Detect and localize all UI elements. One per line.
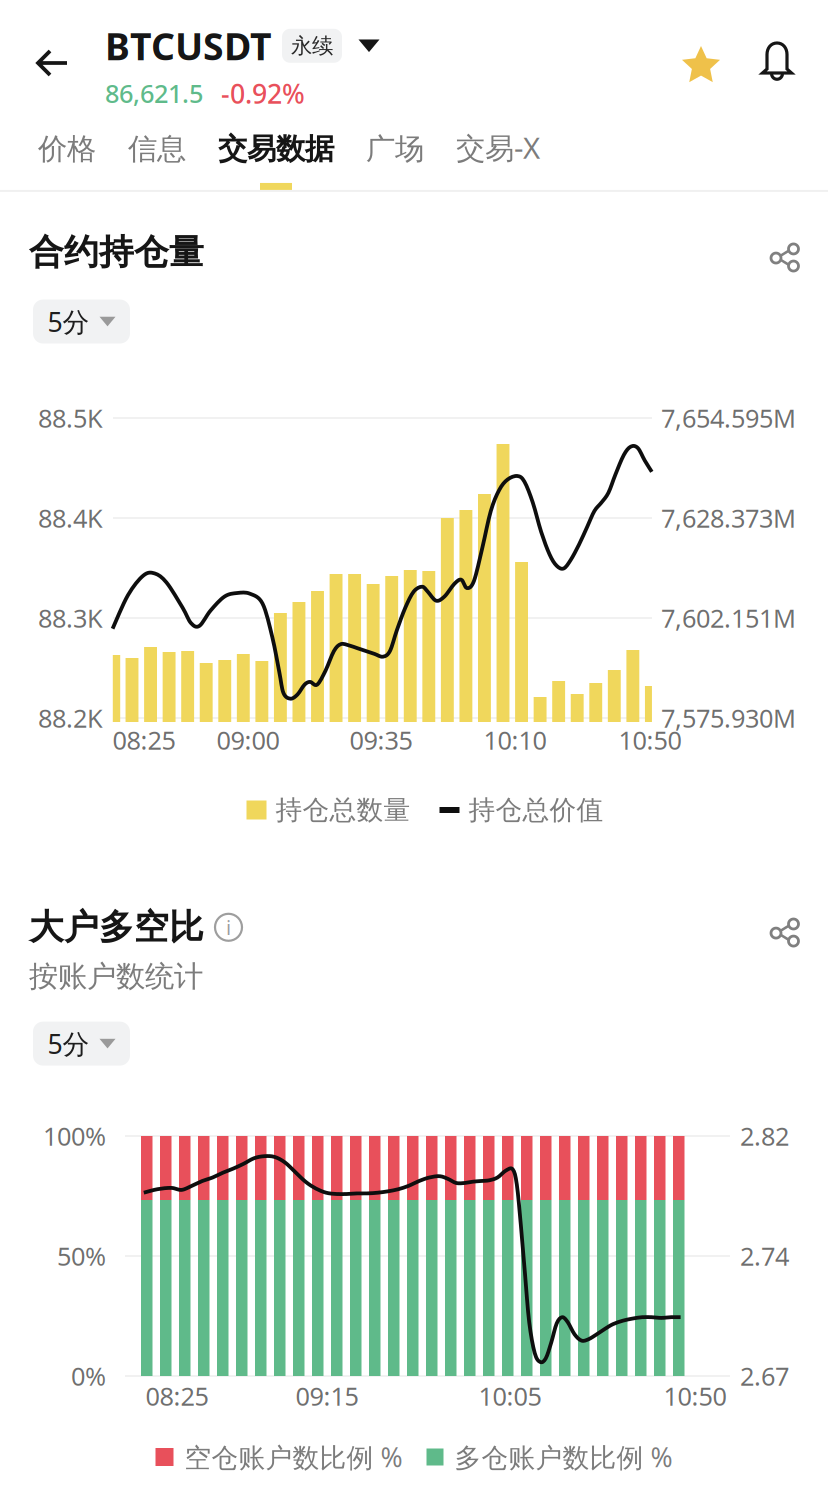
staticText: 按账户数统计 xyxy=(29,959,203,995)
staticText: 7,628.373M xyxy=(661,501,796,535)
staticText: 10:50 xyxy=(618,723,681,757)
staticText: 广场 xyxy=(366,131,424,167)
staticText: 88.2K xyxy=(38,701,103,735)
button[interactable]: Favorite xyxy=(673,39,729,91)
button[interactable]: 交易-X xyxy=(440,128,556,190)
staticText: 合约持仓量 xyxy=(29,231,204,274)
staticText: 永续 xyxy=(291,33,333,59)
staticText: 空仓账户数比例 % xyxy=(184,1439,402,1475)
staticText: 100% xyxy=(43,1119,106,1153)
staticText: 7,654.595M xyxy=(661,401,796,435)
button[interactable]: 永续 xyxy=(282,29,342,63)
button[interactable]: 5分 xyxy=(33,299,130,343)
staticText: 价格 xyxy=(38,131,96,167)
staticText: 08:25 xyxy=(112,723,175,757)
staticText: 交易数据 xyxy=(218,131,334,167)
staticText: 09:00 xyxy=(216,723,279,757)
staticText: 88.4K xyxy=(38,501,103,535)
staticText: 持仓总价值 xyxy=(468,794,603,826)
button[interactable]: 5分 xyxy=(33,1022,130,1066)
staticText: 09:35 xyxy=(349,723,412,757)
button[interactable]: 价格 xyxy=(22,131,112,190)
staticText: 10:50 xyxy=(663,1379,726,1413)
staticText: 信息 xyxy=(128,131,186,167)
button[interactable]: Share xyxy=(753,233,799,271)
button[interactable]: 信息 xyxy=(112,131,202,190)
button[interactable]: Switch contract xyxy=(352,29,386,63)
button[interactable]: 交易数据 xyxy=(202,131,350,190)
staticText: 0% xyxy=(71,1359,106,1393)
staticText: 10:05 xyxy=(478,1379,541,1413)
staticText: 持仓总数量 xyxy=(275,794,410,826)
staticText: 2.67 xyxy=(740,1359,789,1393)
staticText: 多仓账户数比例 % xyxy=(454,1439,672,1475)
staticText: 50% xyxy=(57,1239,106,1273)
button[interactable]: 广场 xyxy=(350,131,440,190)
staticText: 08:25 xyxy=(145,1379,208,1413)
staticText: BTCUSDT xyxy=(105,21,272,71)
staticText: 2.74 xyxy=(740,1239,789,1273)
button[interactable]: Share xyxy=(753,908,799,946)
staticText: 09:15 xyxy=(295,1379,358,1413)
staticText: 88.5K xyxy=(38,401,103,435)
button[interactable]: Alerts xyxy=(760,39,812,91)
staticText: 5分 xyxy=(47,1026,89,1061)
staticText: 2.82 xyxy=(740,1119,789,1153)
staticText: 大户多空比 xyxy=(29,906,204,949)
staticText: i xyxy=(226,914,231,941)
staticText: 7,575.930M xyxy=(661,701,796,735)
staticText: 7,602.151M xyxy=(661,601,796,635)
button[interactable]: Back xyxy=(0,6,105,122)
staticText: -0.92% xyxy=(221,76,305,111)
staticText: 交易-X xyxy=(456,128,540,167)
staticText: 10:10 xyxy=(483,723,546,757)
staticText: 88.3K xyxy=(38,601,103,635)
staticText: 86,621.5 xyxy=(105,76,203,110)
staticText: 5分 xyxy=(47,304,89,339)
